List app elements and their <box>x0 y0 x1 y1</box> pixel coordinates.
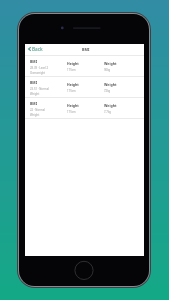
staticText: Height <box>67 82 79 87</box>
staticText: Height <box>67 61 79 66</box>
button[interactable]: BMI <box>25 56 144 76</box>
button[interactable]: BMI <box>25 98 144 118</box>
staticText: BMI <box>30 59 37 64</box>
staticText: BMI <box>82 47 90 52</box>
staticText: 175cm <box>67 89 76 93</box>
other: Back <box>28 47 31 51</box>
staticText: 175cm <box>67 110 76 114</box>
staticText: 90kg <box>104 68 111 72</box>
staticText: Weight <box>30 113 40 117</box>
staticText: 175cm <box>67 68 76 72</box>
staticText: 72kg <box>104 89 111 93</box>
staticText: 28.39 · Level 2 <box>30 66 49 70</box>
button[interactable]: Back <box>27 45 44 53</box>
staticText: Height <box>67 103 79 108</box>
button[interactable]: BMI <box>25 77 144 97</box>
staticText: BMI <box>30 101 37 106</box>
staticText: Weight <box>104 103 117 108</box>
staticText: BMI <box>30 80 37 85</box>
staticText: Weight <box>104 61 117 66</box>
staticText: Overweight <box>30 71 46 75</box>
staticText: Back <box>32 46 43 52</box>
staticText: 22 · Normal <box>30 108 46 112</box>
staticText: 7.7kg <box>104 110 112 114</box>
staticText: 23.51 · Normal <box>30 87 49 91</box>
staticText: Weight <box>104 82 117 87</box>
staticText: Weight <box>30 92 40 96</box>
